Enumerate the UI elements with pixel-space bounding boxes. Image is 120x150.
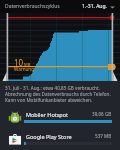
staticText: Google Play Store [26,133,72,140]
button[interactable]: Mobiler Hotspot [0,106,120,128]
staticText: MB [24,62,31,67]
staticText: Warnung [14,66,34,72]
staticText: 31. Juli - 31. Aug.: etwa 40,85 GB verbr… [5,85,100,91]
button[interactable]: Google Play Store [0,128,120,150]
staticText: Kann von Mobilfunkanbieter abweichen. [5,97,93,103]
staticText: Datenverbrauchszyklus [5,3,60,10]
staticText: 537 MB [95,133,112,139]
staticText: Mobiler Hotspot [26,111,69,118]
button[interactable]: 1.-31. Aug. [82,3,120,10]
staticText: 10 [14,57,24,68]
staticText: 39,06 GB [92,111,112,117]
staticText: Abrechnung des Datenverbrauchs durch Tel… [5,91,111,97]
staticText: 1.-31. Aug. [82,3,107,10]
